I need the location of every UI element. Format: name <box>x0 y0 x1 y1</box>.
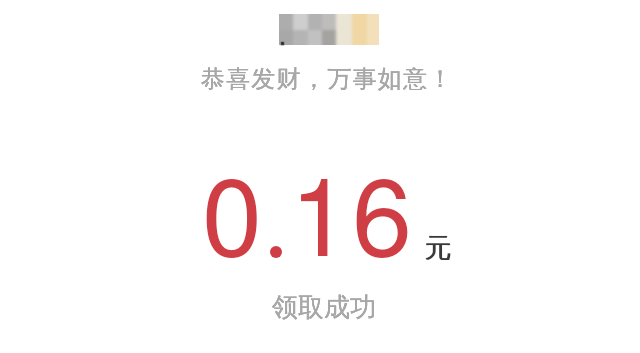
staticText: 元 <box>425 231 452 265</box>
button[interactable]: Sender name (hidden) <box>277 12 381 46</box>
staticText: 0 <box>202 132 263 287</box>
staticText: 1 <box>290 132 351 287</box>
staticText: 领取成功 <box>272 291 376 324</box>
staticText: 恭喜发财，万事如意！ <box>200 64 453 94</box>
staticText: 领取成功 <box>272 291 376 324</box>
staticText: 恭喜发财，万事如意！ <box>200 64 453 94</box>
staticText: 元 <box>424 231 451 265</box>
staticText: 6 <box>352 132 413 287</box>
